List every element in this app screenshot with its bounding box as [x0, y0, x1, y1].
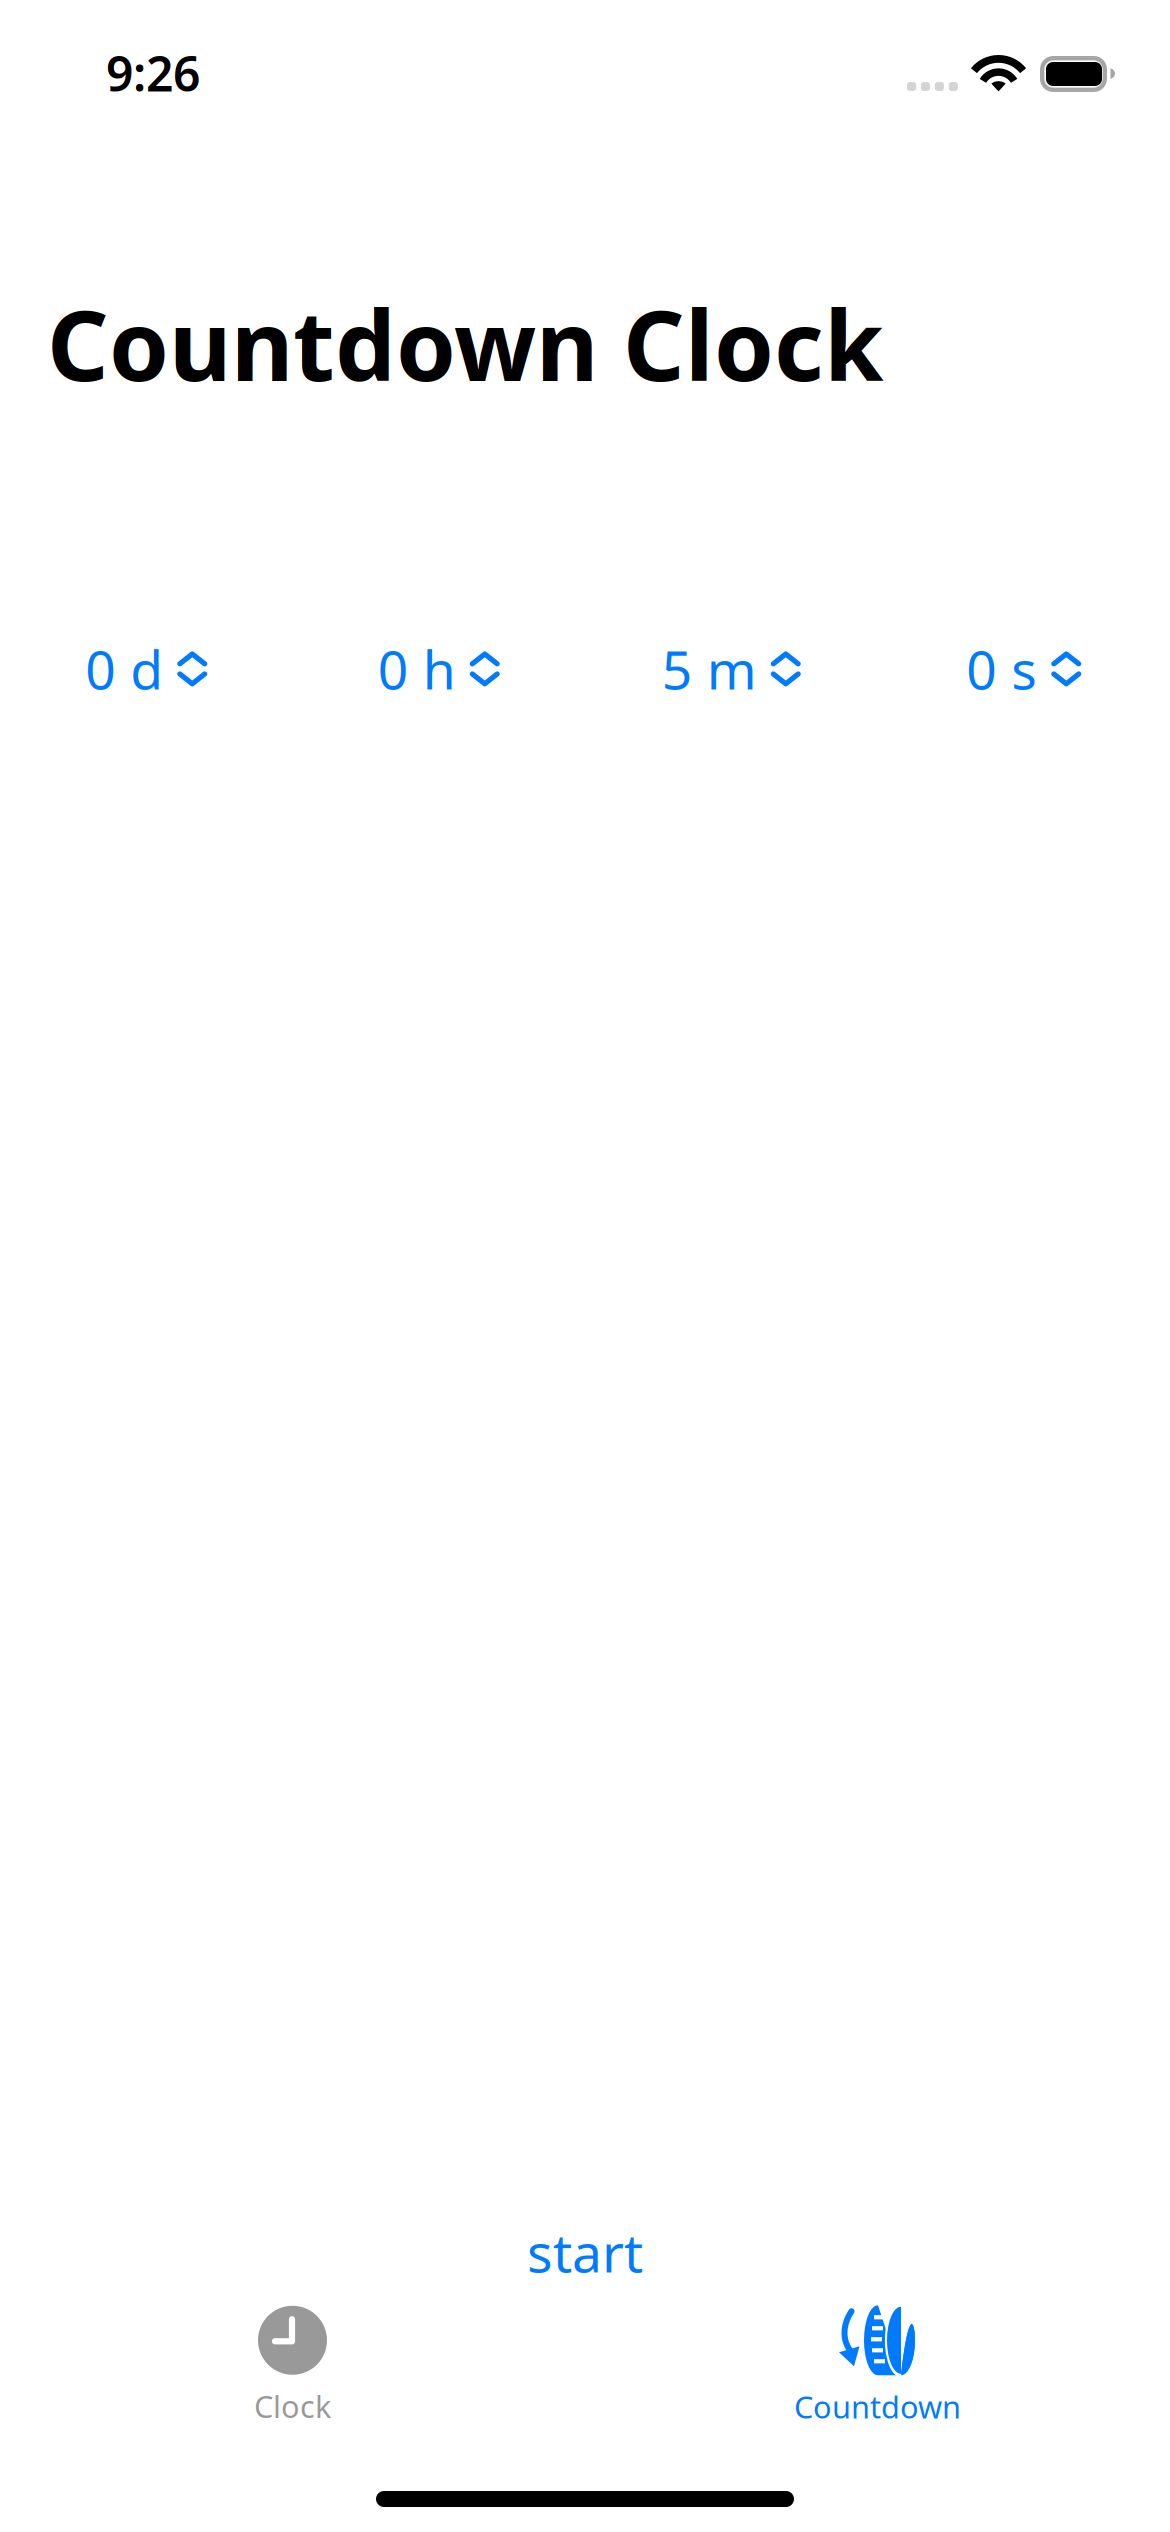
staticText: start [527, 2216, 643, 2287]
button[interactable]: start [527, 2216, 643, 2287]
button[interactable]: 0 d [0, 633, 292, 704]
staticText: 9:26 [106, 41, 200, 105]
staticText: Countdown [794, 2386, 961, 2427]
staticText: 0 d [85, 633, 163, 704]
button[interactable]: 0 s [877, 633, 1170, 704]
staticText: Countdown Clock [47, 280, 884, 407]
staticText: Clock [254, 2386, 331, 2426]
button[interactable]: 0 h [292, 633, 585, 704]
button[interactable]: Clock [0, 2306, 585, 2426]
button[interactable]: Countdown [585, 2305, 1170, 2427]
staticText: 5 m [662, 633, 757, 704]
button[interactable]: 5 m [585, 633, 877, 704]
staticText: 0 h [378, 633, 456, 704]
staticText: 0 s [966, 633, 1037, 704]
